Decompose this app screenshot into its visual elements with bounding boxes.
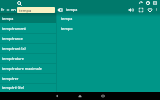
staticText: tempérance xyxy=(2,36,23,41)
button[interactable]: Swap languages xyxy=(6,8,10,12)
staticText: tempa xyxy=(66,7,78,12)
button[interactable]: tempa xyxy=(0,13,56,23)
button[interactable]: Clear search xyxy=(57,7,63,13)
button[interactable]: tempérance xyxy=(0,33,56,43)
staticText: tempérant (e) xyxy=(2,46,26,51)
staticText: tempérament xyxy=(2,26,26,31)
button[interactable]: Recent apps xyxy=(96,92,110,100)
button[interactable]: tempérant (e) xyxy=(0,43,56,53)
staticText: température xyxy=(2,56,24,61)
button[interactable]: Home xyxy=(73,92,87,100)
staticText: fr xyxy=(1,7,5,12)
button[interactable]: tempéré (ée) xyxy=(0,83,56,92)
button[interactable]: Add to favourites xyxy=(147,7,153,13)
staticText: tempo xyxy=(61,26,73,31)
button[interactable]: tempérament xyxy=(0,23,56,33)
button[interactable]: tempérer xyxy=(0,73,56,83)
button[interactable]: température maximale xyxy=(0,63,56,73)
staticText: tempa xyxy=(19,8,32,13)
staticText: température maximale xyxy=(2,66,42,71)
staticText: en xyxy=(11,7,16,12)
button[interactable]: Back xyxy=(50,92,64,100)
staticText: tempa xyxy=(61,16,73,21)
button[interactable]: tempa xyxy=(17,7,55,13)
button[interactable]: Fullscreen xyxy=(138,7,144,13)
button[interactable]: tempo xyxy=(57,23,160,33)
staticText: tempa xyxy=(2,16,14,21)
button[interactable]: Pronounce xyxy=(128,7,134,13)
button[interactable]: température xyxy=(0,53,56,63)
button[interactable]: More options xyxy=(154,7,159,12)
button[interactable]: tempa xyxy=(57,13,160,23)
staticText: tempéré (ée) xyxy=(2,85,25,90)
staticText: tempérer xyxy=(2,76,19,81)
